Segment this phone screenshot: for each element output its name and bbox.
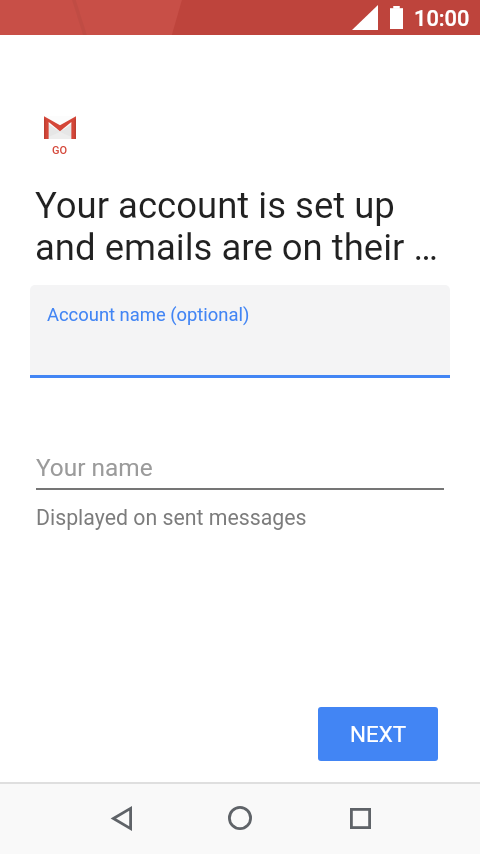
button[interactable]: NEXT — [318, 707, 438, 761]
staticText: Displayed on sent messages — [36, 505, 307, 530]
button[interactable]: Home — [216, 794, 264, 842]
staticText: Your name — [36, 453, 153, 482]
staticText: GO — [52, 144, 68, 157]
staticText: Account name (optional) — [47, 304, 250, 326]
staticText: 10:00 — [414, 6, 470, 32]
button[interactable]: Back — [96, 794, 144, 842]
staticText: NEXT — [350, 721, 407, 747]
button[interactable]: Your name — [36, 452, 444, 490]
button[interactable]: Recent apps — [336, 794, 384, 842]
staticText: Your account is set up and emails are on… — [35, 184, 438, 269]
button[interactable]: Account name (optional) — [30, 285, 450, 378]
